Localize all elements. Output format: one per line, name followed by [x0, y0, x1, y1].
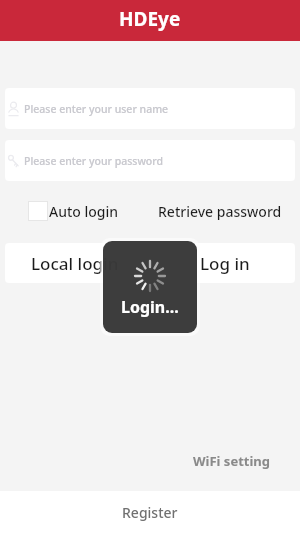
- staticText: Register: [122, 503, 178, 522]
- button[interactable]: User name: [5, 88, 295, 129]
- button[interactable]: Local login: [5, 243, 145, 283]
- other: Password: [8, 153, 19, 169]
- button[interactable]: Log in: [155, 243, 295, 283]
- button[interactable]: Auto login: [24, 196, 119, 226]
- staticText: Log in: [200, 252, 250, 275]
- staticText: Local login: [31, 252, 119, 275]
- button[interactable]: Register: [0, 491, 300, 533]
- button[interactable]: Password: [5, 140, 295, 181]
- button[interactable]: Retrieve password: [153, 196, 287, 226]
- staticText: Login...: [121, 296, 179, 318]
- staticText: WiFi setting: [193, 452, 270, 470]
- button[interactable]: WiFi setting: [188, 450, 275, 472]
- staticText: HDEye: [119, 6, 181, 32]
- staticText: Auto login: [49, 202, 119, 221]
- staticText: Please enter your user name: [24, 102, 169, 116]
- other: User name: [8, 101, 19, 117]
- staticText: Retrieve password: [158, 202, 282, 221]
- staticText: Please enter your password: [24, 154, 164, 168]
